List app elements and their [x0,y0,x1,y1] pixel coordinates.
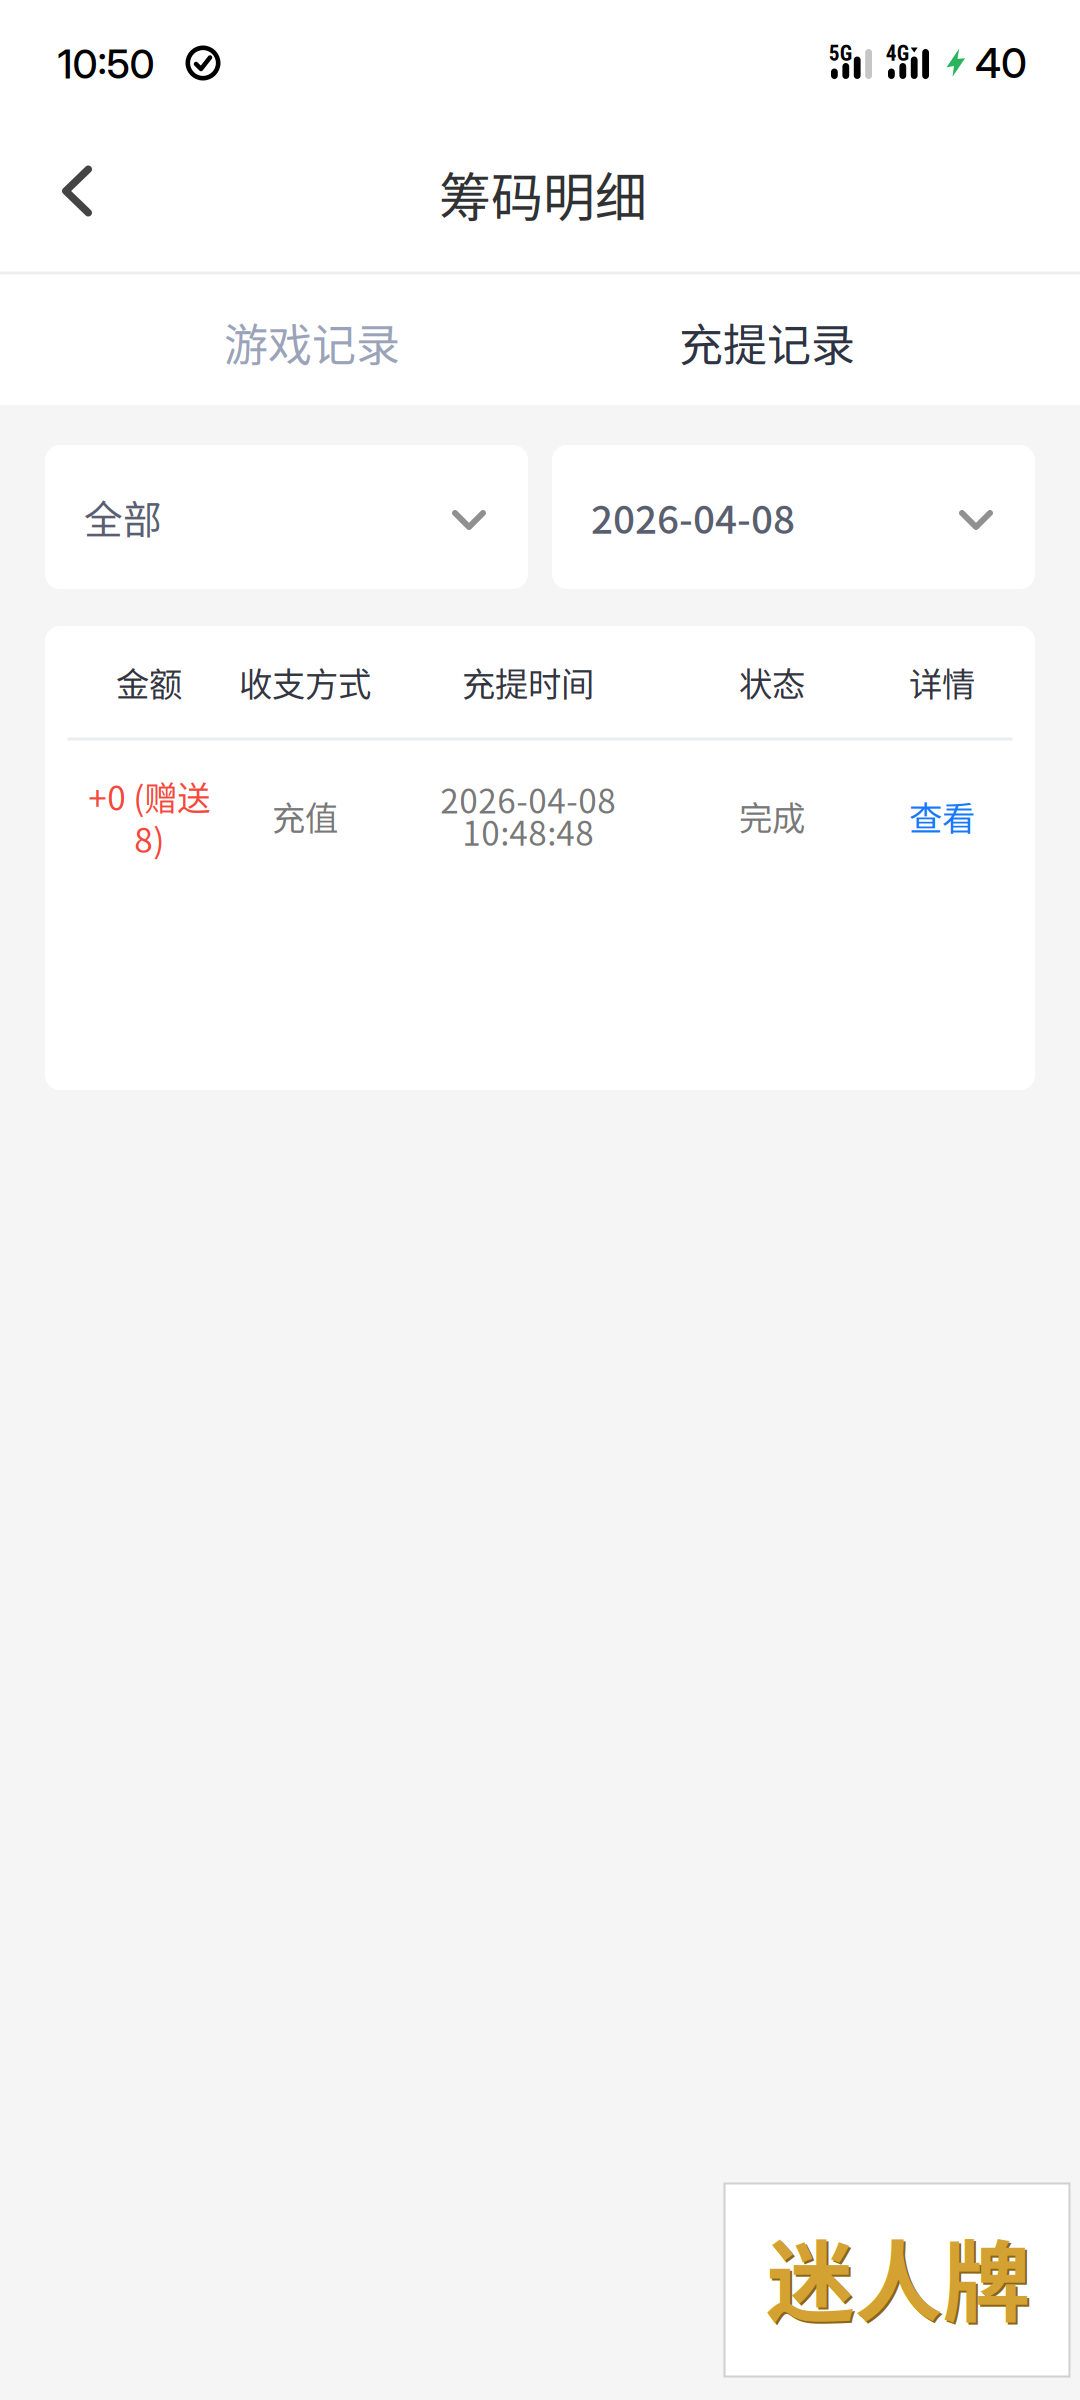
staticText: 5G [829,41,852,66]
staticText: 40 [975,38,1027,88]
staticText: 迷人牌 [768,2214,1032,2341]
staticText: 4G [886,41,909,66]
staticText: 完成 [739,792,805,840]
staticText: +0 (赠送 8) [88,772,210,862]
staticText: 金额 [116,658,182,706]
staticText: 2026-04-08 10:48:48 [440,775,616,855]
button[interactable]: 充提记录 [617,277,917,407]
staticText: 查看 [909,792,975,840]
button[interactable]: 2026-04-08 [552,445,1035,589]
staticText: 10:50 [57,40,154,88]
staticText: 游戏记录 [224,310,400,374]
button[interactable]: 查看 [877,776,1007,856]
staticText: 详情 [909,658,975,706]
staticText: 收支方式 [239,658,371,706]
staticText: 迷人牌 [766,2212,1030,2339]
button[interactable]: 全部 [45,445,528,589]
staticText: 充值 [272,792,338,840]
staticText: 充提记录 [679,310,855,374]
staticText: 2026-04-08 [591,489,795,545]
button[interactable]: Back [17,126,137,256]
button[interactable]: 游戏记录 [162,277,462,407]
staticText: 状态 [739,658,805,706]
staticText: 充提时间 [462,658,594,706]
staticText: 全部 [84,489,162,545]
staticText: 筹码明细 [439,156,647,232]
